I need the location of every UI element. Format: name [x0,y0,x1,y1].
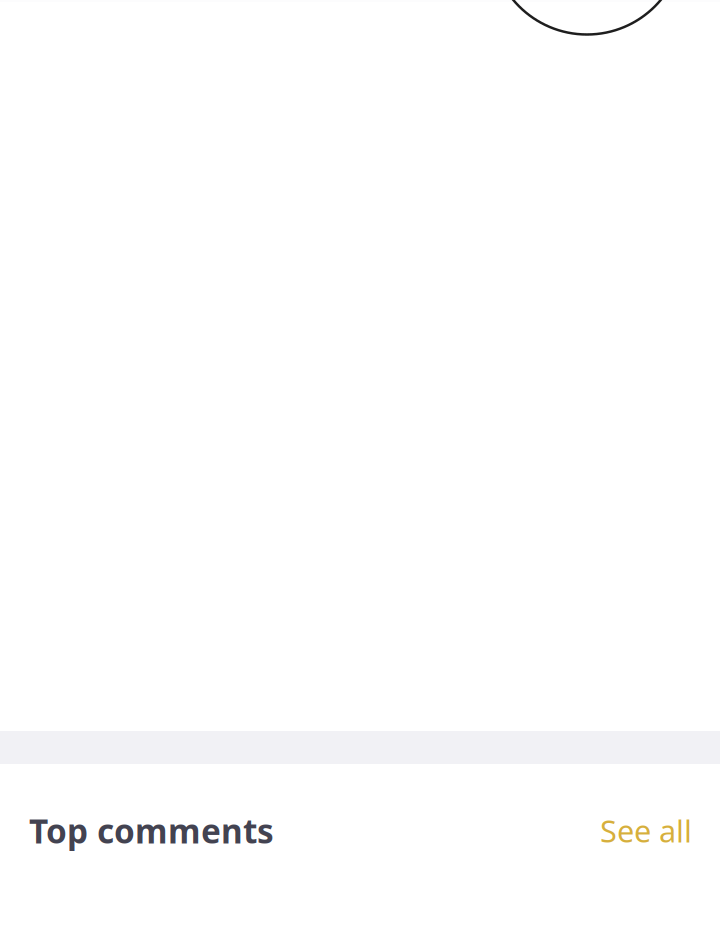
staticText: See all [600,810,692,851]
staticText: Top comments [29,808,274,853]
button[interactable]: See all [578,796,692,865]
